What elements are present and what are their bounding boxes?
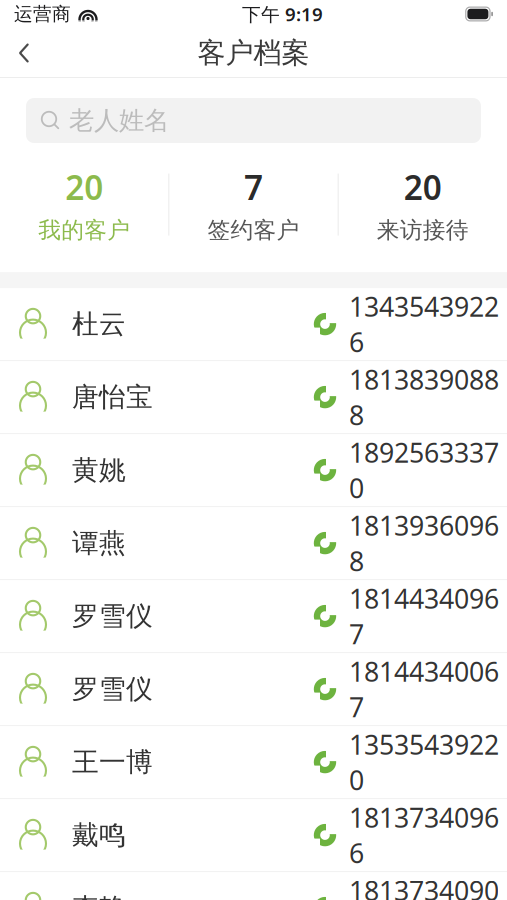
button[interactable]: 唐怡宝 [0, 361, 507, 434]
staticText: 我的客户 [38, 216, 130, 244]
staticText: 20 [404, 165, 442, 209]
button[interactable]: 7 [169, 161, 338, 248]
button[interactable]: 李静 [0, 872, 507, 900]
button[interactable]: 王一博 [0, 726, 507, 799]
button[interactable]: 罗雪仪 [0, 653, 507, 726]
staticText: 唐怡宝 [72, 381, 153, 413]
staticText: 18138390888 [349, 362, 499, 432]
button[interactable]: 返回 [0, 30, 48, 76]
staticText: 王一博 [72, 746, 153, 778]
staticText: 罗雪仪 [72, 673, 153, 705]
button[interactable]: 谭燕 [0, 507, 507, 580]
staticText: 下午 9:19 [242, 2, 323, 26]
staticText: 运营商 [14, 2, 71, 25]
staticText: 13535439220 [349, 727, 499, 797]
staticText: 7 [244, 165, 263, 209]
staticText: 18144340967 [349, 581, 499, 651]
staticText: 18144340067 [349, 654, 499, 724]
staticText: 18137340900 [349, 873, 499, 900]
button[interactable]: 20 [0, 161, 168, 248]
staticText: 18137340966 [349, 800, 499, 870]
button[interactable]: 罗雪仪 [0, 580, 507, 653]
button[interactable]: 20 [339, 161, 507, 248]
staticText: 罗雪仪 [72, 600, 153, 632]
staticText: 来访接待 [377, 216, 469, 244]
staticText: 18925633370 [349, 435, 499, 505]
staticText: 黄姚 [72, 454, 126, 486]
button[interactable]: 黄姚 [0, 434, 507, 507]
staticText: 客户档案 [197, 36, 309, 70]
staticText: 李静 [72, 892, 126, 900]
staticText: 18139360968 [349, 508, 499, 578]
staticText: 签约客户 [207, 216, 299, 244]
staticText: 谭燕 [72, 527, 126, 559]
button[interactable]: 戴鸣 [0, 799, 507, 872]
staticText: 老人姓名 [69, 105, 169, 136]
staticText: 20 [65, 165, 103, 209]
staticText: 杜云 [72, 308, 126, 340]
staticText: 13435439226 [349, 289, 499, 359]
button[interactable]: 搜索老人姓名 [26, 98, 481, 143]
button[interactable]: 杜云 [0, 288, 507, 361]
staticText: 戴鸣 [72, 819, 126, 851]
